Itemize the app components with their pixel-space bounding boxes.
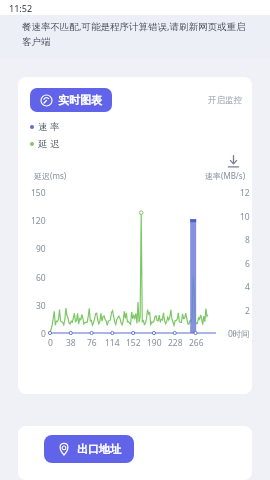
staticText: 出口地址 [77, 442, 121, 456]
button[interactable]: Download [225, 153, 242, 170]
staticText: 餐速率不匹配,可能是程序计算错误,请刷新网页或重启客户端 [22, 20, 254, 48]
staticText: 120 [31, 215, 46, 227]
staticText: 0时间 [228, 328, 250, 340]
staticText: 12 [240, 187, 250, 199]
staticText: 228 [168, 337, 183, 349]
staticText: 4 [245, 281, 250, 293]
staticText: 60 [36, 272, 46, 284]
staticText: 2 [245, 305, 250, 317]
staticText: 190 [147, 337, 162, 349]
staticText: 延 迟 [38, 137, 60, 150]
staticText: 10 [240, 211, 250, 223]
button[interactable]: 开启监控 [202, 91, 248, 110]
staticText: 速 率 [38, 120, 60, 133]
staticText: 0 [41, 328, 46, 340]
staticText: 152 [126, 337, 141, 349]
staticText: 90 [36, 243, 46, 255]
staticText: 速率(MB/s) [205, 170, 246, 181]
staticText: 114 [105, 337, 120, 349]
staticText: 30 [36, 300, 46, 312]
staticText: 延迟(ms) [34, 170, 67, 181]
staticText: 8 [245, 234, 250, 246]
staticText: 6 [245, 258, 250, 270]
button[interactable]: 实时图表 [30, 88, 112, 112]
staticText: 266 [189, 337, 204, 349]
staticText: 开启监控 [208, 95, 242, 106]
staticText: 38 [66, 337, 76, 349]
staticText: 实时图表 [58, 93, 102, 107]
staticText: 0 [48, 337, 53, 349]
staticText: 76 [87, 337, 97, 349]
staticText: 150 [31, 187, 46, 199]
button[interactable]: 出口地址 [44, 435, 134, 463]
staticText: 11:52 [9, 2, 33, 14]
